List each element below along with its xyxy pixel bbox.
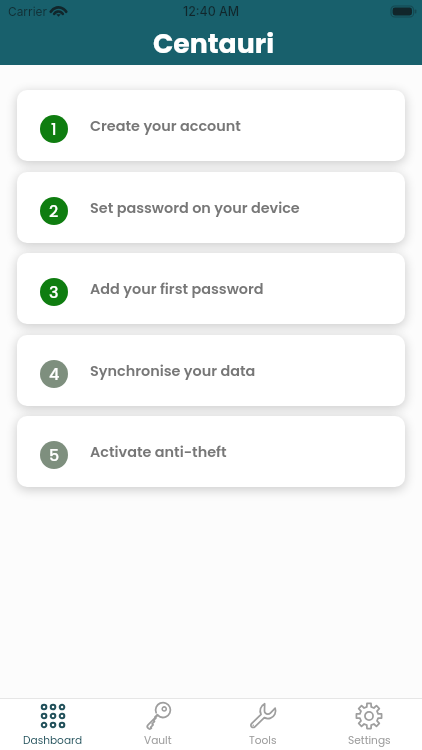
other: Vault <box>144 702 172 730</box>
staticText: Set password on your device <box>90 198 300 218</box>
staticText: 2 <box>49 200 59 222</box>
staticText: Create your account <box>90 116 241 136</box>
other: Tools <box>249 702 277 730</box>
staticText: 1 <box>51 118 57 140</box>
staticText: 5 <box>49 444 60 466</box>
staticText: Centauri <box>153 25 275 62</box>
staticText: Settings <box>348 733 391 748</box>
button[interactable]: 1 <box>17 90 405 161</box>
button[interactable]: Settings <box>316 699 422 750</box>
button[interactable]: 2 <box>17 172 405 243</box>
staticText: Tools <box>249 733 277 748</box>
staticText: Add your first password <box>90 279 264 299</box>
staticText: Carrier <box>8 4 47 18</box>
staticText: Dashboard <box>23 733 83 748</box>
button[interactable]: 3 <box>17 253 405 324</box>
staticText: Synchronise your data <box>90 361 256 381</box>
other: Dashboard <box>39 702 67 730</box>
staticText: Vault <box>144 733 172 748</box>
other: Settings <box>355 702 383 730</box>
button[interactable]: Dashboard <box>0 699 105 750</box>
staticText: Activate anti-theft <box>90 442 227 462</box>
button[interactable]: Vault <box>105 699 210 750</box>
staticText: 4 <box>49 363 60 385</box>
button[interactable]: Tools <box>210 699 316 750</box>
staticText: 3 <box>49 281 59 303</box>
button[interactable]: 5 <box>17 416 405 487</box>
staticText: 12:40 AM <box>183 4 240 19</box>
button[interactable]: 4 <box>17 335 405 406</box>
